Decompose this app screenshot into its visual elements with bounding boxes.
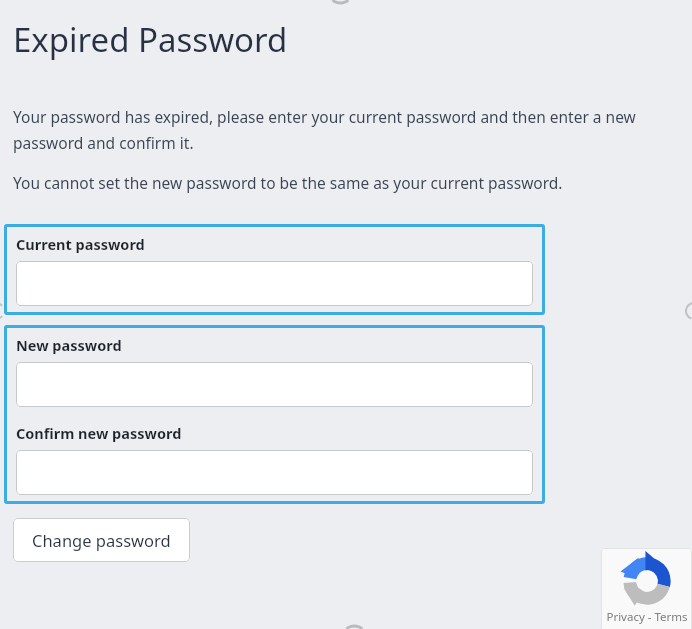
staticText: Confirm new password (16, 423, 182, 443)
button[interactable]: Confirm new password (16, 450, 533, 495)
staticText: You cannot set the new password to be th… (13, 172, 563, 193)
staticText: New password (16, 335, 122, 355)
staticText: Your password has expired, please enter … (13, 106, 678, 154)
button[interactable]: reCAPTCHA Privacy and Terms (601, 548, 692, 629)
button[interactable]: Change password (13, 518, 190, 562)
staticText: Change password (32, 529, 171, 551)
staticText: Privacy - Terms (606, 609, 688, 625)
button[interactable]: New password (16, 362, 533, 407)
button[interactable]: Current password (16, 261, 533, 306)
staticText: Expired Password (13, 17, 288, 62)
staticText: Current password (16, 234, 145, 254)
